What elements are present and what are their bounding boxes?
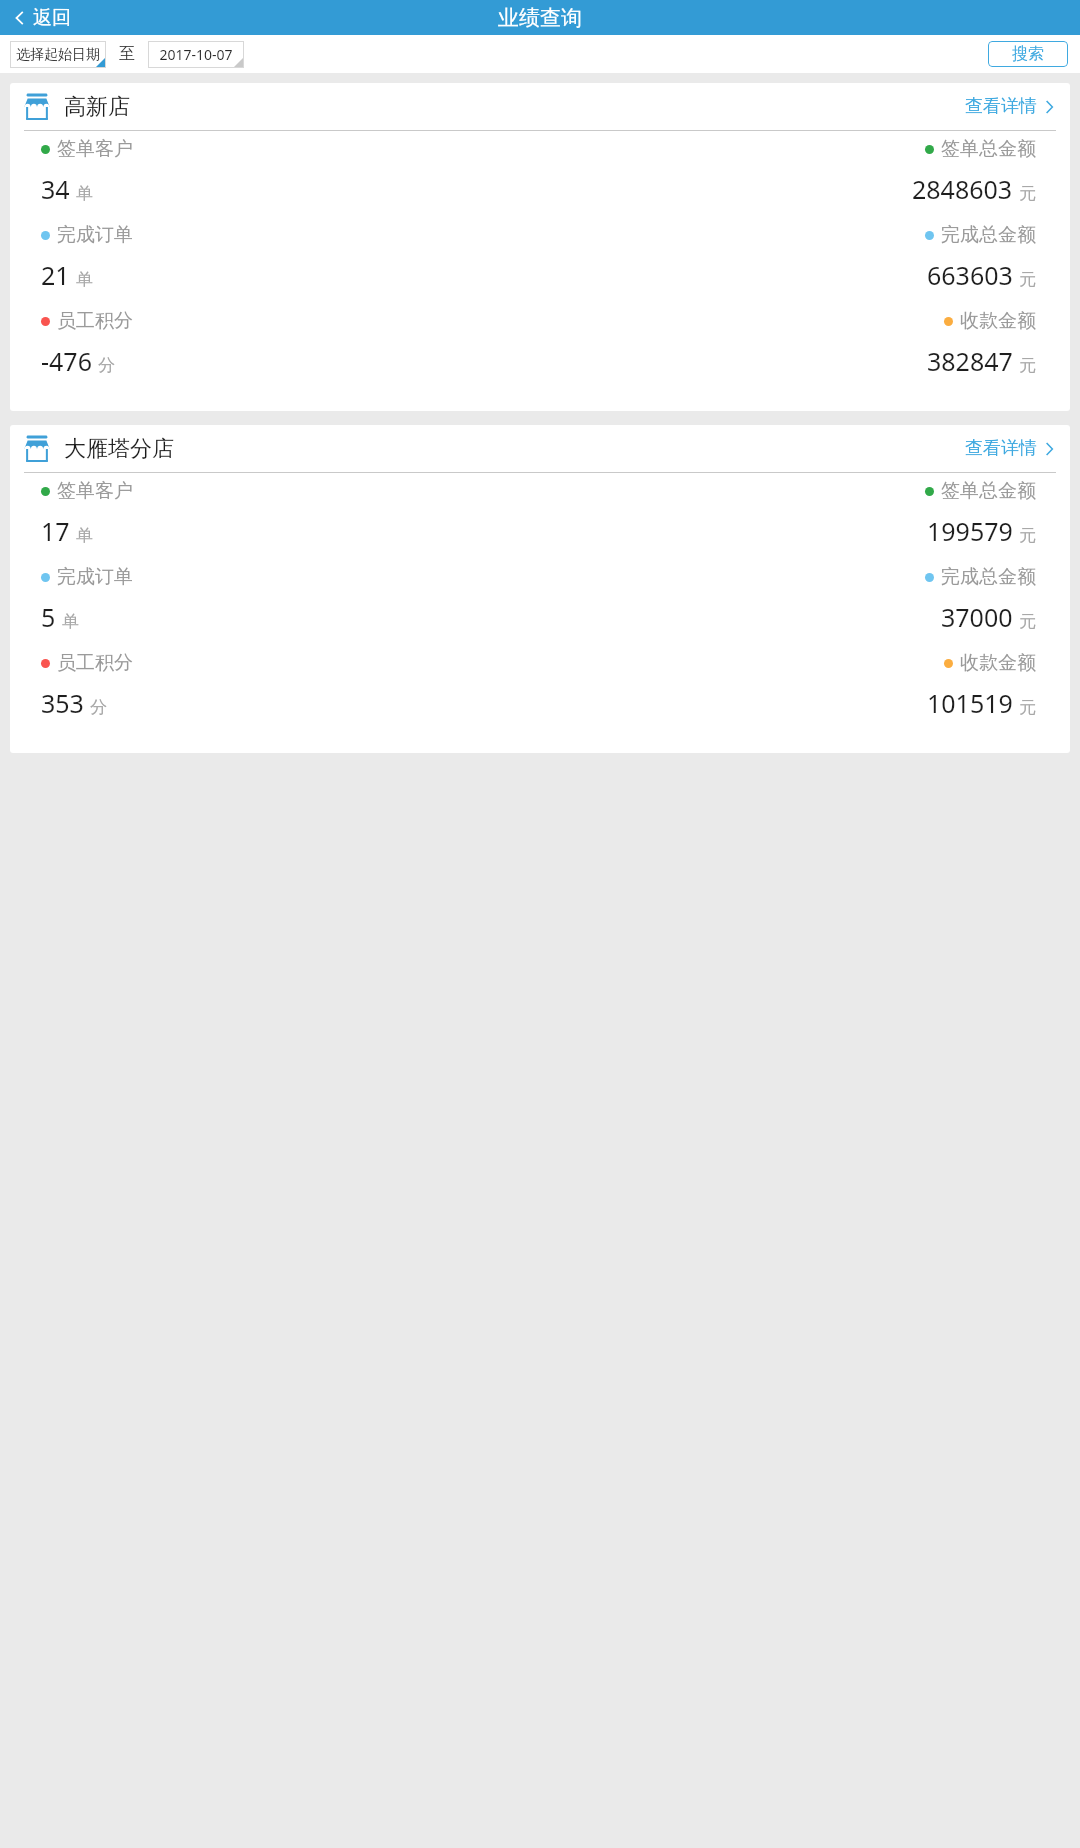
button[interactable]: 2017-10-07 — [148, 41, 244, 68]
staticText: 单 — [62, 611, 79, 632]
staticText: 签单总金额 — [941, 479, 1036, 503]
staticText: 元 — [1019, 697, 1036, 718]
staticText: 2017-10-07 — [159, 45, 233, 64]
staticText: 选择起始日期 — [16, 46, 100, 64]
staticText: 至 — [106, 44, 148, 64]
staticText: 元 — [1019, 525, 1036, 546]
staticText: 收款金额 — [960, 309, 1036, 333]
staticText: 21 — [41, 258, 70, 292]
staticText: -476 — [41, 344, 92, 378]
staticText: 353 — [41, 686, 84, 720]
staticText: 签单客户 — [57, 137, 133, 161]
button[interactable]: 返回 — [10, 2, 75, 34]
button[interactable]: 搜索 — [988, 41, 1068, 67]
staticText: 完成总金额 — [941, 565, 1036, 589]
staticText: 单 — [76, 525, 93, 546]
staticText: 2848603 — [912, 172, 1013, 206]
staticText: 元 — [1019, 355, 1036, 376]
button[interactable]: 选择起始日期 — [10, 41, 106, 68]
staticText: 17 — [41, 514, 70, 548]
staticText: 签单客户 — [57, 479, 133, 503]
staticText: 高新店 — [64, 93, 130, 121]
staticText: 分 — [90, 697, 107, 718]
staticText: 查看详情 — [965, 437, 1037, 460]
staticText: 签单总金额 — [941, 137, 1036, 161]
staticText: 分 — [98, 355, 115, 376]
staticText: 员工积分 — [57, 309, 133, 333]
staticText: 搜索 — [1012, 44, 1044, 64]
staticText: 业绩查询 — [498, 5, 582, 31]
staticText: 663603 — [927, 258, 1013, 292]
staticText: 完成订单 — [57, 565, 133, 589]
staticText: 34 — [41, 172, 70, 206]
staticText: 完成总金额 — [941, 223, 1036, 247]
staticText: 元 — [1019, 269, 1036, 290]
staticText: 查看详情 — [965, 95, 1037, 118]
staticText: 单 — [76, 183, 93, 204]
staticText: 37000 — [941, 600, 1013, 634]
staticText: 收款金额 — [960, 651, 1036, 675]
staticText: 101519 — [927, 686, 1013, 720]
staticText: 返回 — [33, 6, 71, 30]
button[interactable]: 查看详情 — [963, 89, 1056, 124]
staticText: 元 — [1019, 611, 1036, 632]
staticText: 员工积分 — [57, 651, 133, 675]
staticText: 大雁塔分店 — [64, 435, 174, 463]
staticText: 5 — [41, 600, 56, 634]
staticText: 382847 — [927, 344, 1013, 378]
staticText: 199579 — [927, 514, 1013, 548]
staticText: 元 — [1019, 183, 1036, 204]
staticText: 完成订单 — [57, 223, 133, 247]
staticText: 单 — [76, 269, 93, 290]
button[interactable]: 查看详情 — [963, 431, 1056, 466]
